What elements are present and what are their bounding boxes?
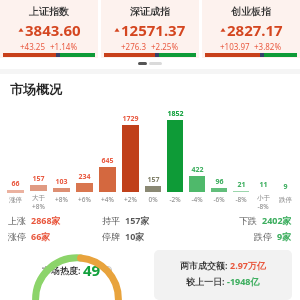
staticText: 9家 [277, 230, 292, 242]
staticText: 10家 [125, 230, 145, 242]
staticText: 大于 [32, 194, 45, 202]
staticText: 21 [237, 180, 246, 190]
staticText: 9 [283, 182, 288, 192]
button[interactable]: 跌停 [197, 230, 292, 242]
staticText: +6% [78, 195, 91, 204]
button[interactable]: 停牌 [102, 230, 197, 242]
staticText: +8% [55, 195, 68, 204]
button[interactable]: 两市成交额: [154, 250, 292, 300]
staticText: -8% [257, 202, 269, 211]
staticText: 下跌 [239, 215, 257, 226]
button[interactable]: 157 [142, 99, 164, 211]
staticText: 66 [11, 179, 20, 189]
staticText: 157 [32, 174, 45, 184]
staticText: 422 [191, 165, 204, 175]
staticText: 涨停 [8, 231, 26, 242]
staticText: 持平 [102, 215, 120, 226]
staticText: 2827.17 [227, 20, 283, 40]
button[interactable]: 422 [186, 99, 208, 211]
staticText: +4% [101, 195, 114, 204]
staticText: +3.82% [254, 41, 282, 52]
staticText: 66家 [31, 230, 51, 242]
staticText: 创业板指 [231, 5, 271, 18]
staticText: 上证指数 [29, 5, 69, 18]
staticText: -6% [213, 195, 225, 204]
staticText: 2402家 [262, 214, 292, 226]
staticText: 跌停 [279, 196, 292, 204]
button[interactable]: 1729 [119, 99, 142, 211]
staticText: 跌停 [254, 231, 272, 242]
staticText: 3843.60 [25, 20, 81, 40]
staticText: 11 [259, 180, 268, 190]
staticText: +1.14% [50, 41, 78, 52]
button[interactable]: 市场概况 [10, 81, 300, 97]
staticText: +276.3 [121, 41, 147, 52]
staticText: -2% [169, 195, 181, 204]
button[interactable]: 21 [230, 99, 252, 211]
button[interactable]: 234 [73, 99, 96, 211]
button[interactable]: 11 [252, 99, 274, 211]
staticText: 深证成指 [130, 5, 170, 18]
staticText: 645 [101, 156, 114, 166]
staticText: 157 [147, 175, 160, 185]
staticText: 157家 [125, 214, 150, 226]
staticText: 1852 [167, 109, 184, 119]
staticText: +2.25% [151, 41, 179, 52]
button[interactable]: 103 [50, 99, 73, 211]
staticText: +103.97 [220, 41, 250, 52]
button[interactable]: 上证指数 [0, 0, 98, 58]
staticText: 1729 [122, 114, 139, 124]
staticText: 小于 [257, 194, 270, 202]
staticText: 停牌 [102, 231, 120, 242]
button[interactable]: 上涨 [8, 214, 102, 226]
button[interactable]: 9 [274, 99, 296, 211]
button[interactable]: 持平 [102, 214, 197, 226]
staticText: 较上一日: [186, 275, 225, 287]
staticText: +8% [32, 202, 45, 211]
button[interactable]: 96 [208, 99, 230, 211]
staticText: 2868家 [31, 214, 61, 226]
staticText: 103 [55, 177, 68, 187]
button[interactable]: 66 [4, 99, 27, 211]
staticText: 市场概况 [10, 81, 62, 97]
button[interactable]: 645 [96, 99, 119, 211]
staticText: 12571.37 [121, 20, 186, 40]
button[interactable]: 涨停 [8, 230, 102, 242]
other: 说明 [104, 266, 112, 274]
staticText: 49 [83, 260, 101, 280]
staticText: 96 [215, 177, 224, 187]
button[interactable]: 深证成指 [101, 0, 199, 58]
staticText: +43.25 [20, 41, 46, 52]
staticText: 上涨 [8, 215, 26, 226]
staticText: -4% [191, 195, 203, 204]
staticText: 涨停 [9, 196, 22, 204]
button[interactable]: 下跌 [197, 214, 292, 226]
button[interactable]: 157 [27, 99, 50, 211]
staticText: +2% [124, 195, 137, 204]
button[interactable]: 市场热度: [8, 250, 146, 300]
staticText: 市场热度: [42, 264, 81, 276]
button[interactable]: 1852 [164, 99, 186, 211]
staticText: 2.97万亿 [230, 259, 266, 271]
button[interactable]: 创业板指 [202, 0, 300, 58]
staticText: -1948亿 [227, 275, 260, 287]
staticText: 234 [78, 172, 91, 182]
staticText: 0% [148, 195, 158, 204]
staticText: 两市成交额: [180, 259, 228, 271]
staticText: -8% [235, 195, 247, 204]
